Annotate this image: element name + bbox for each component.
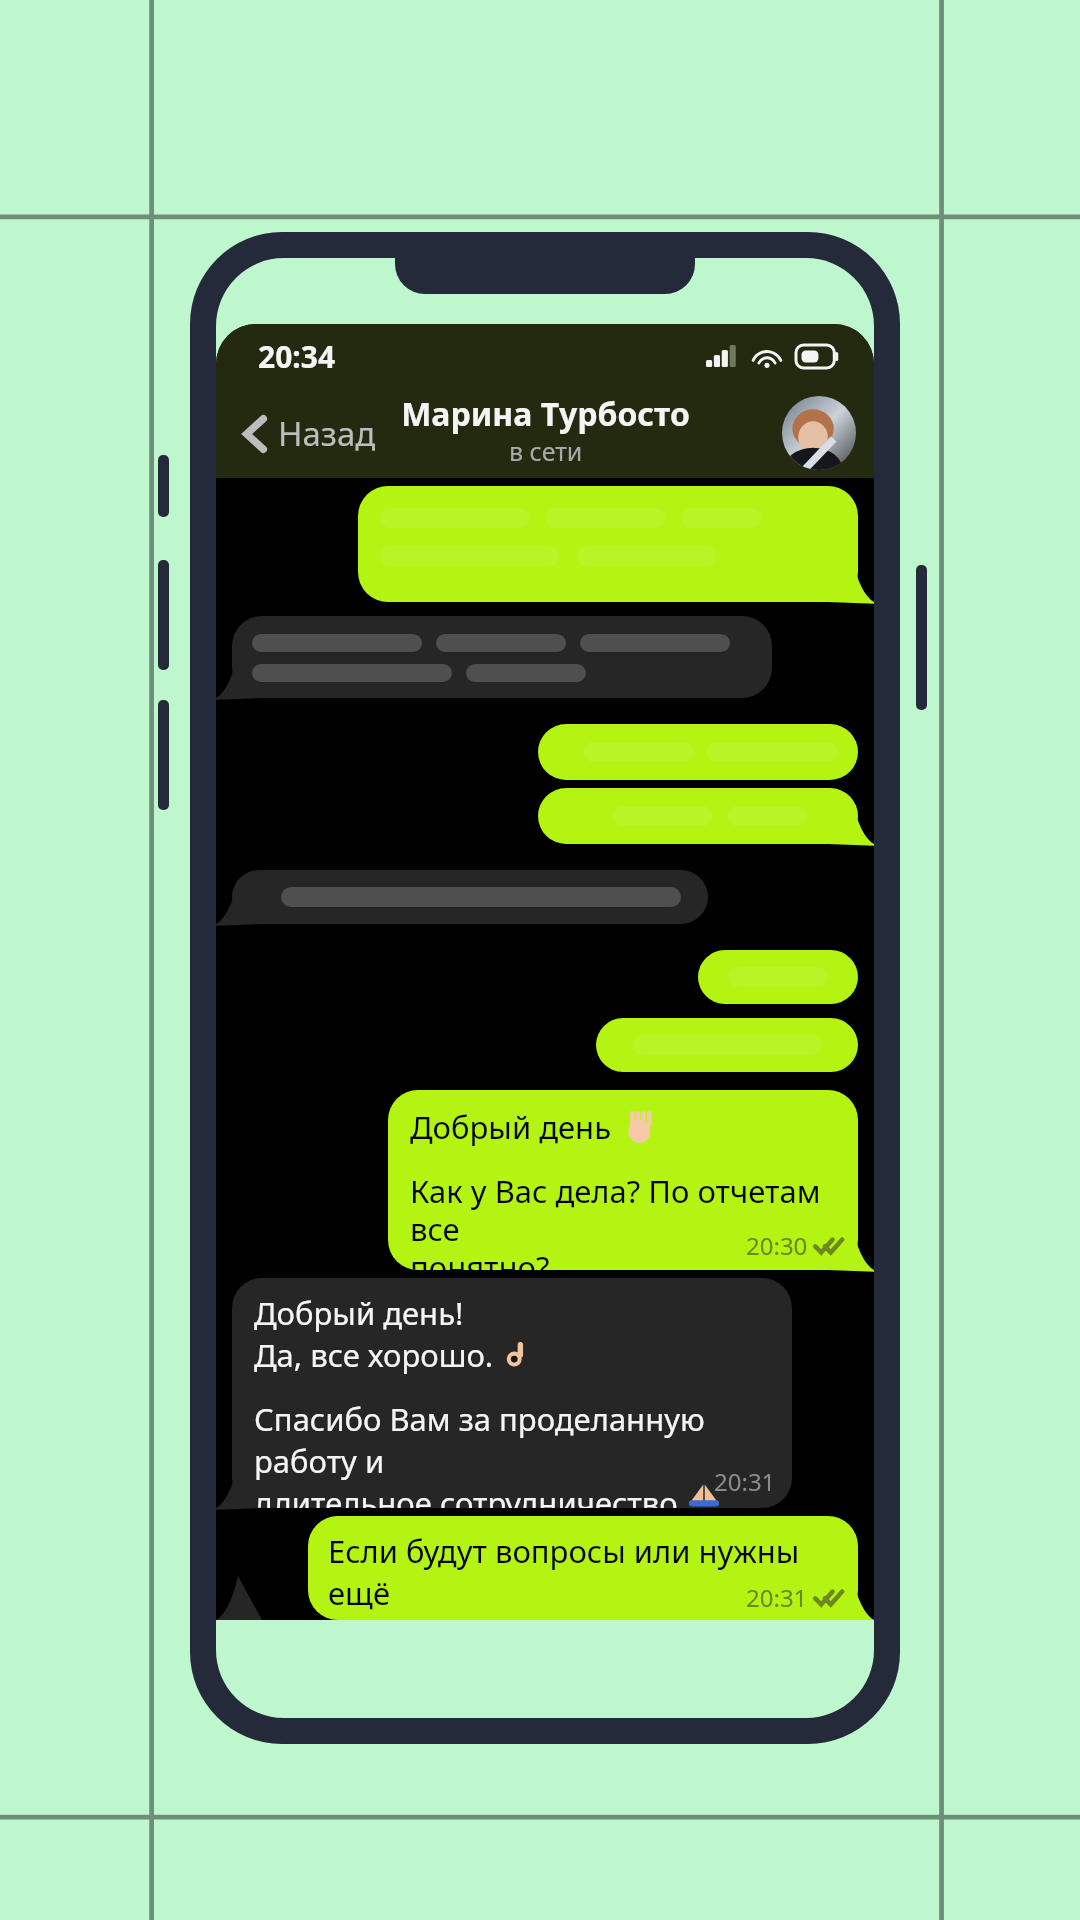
staticText: длительное сотрудничество [254,1482,686,1508]
staticText: Да, все хорошо. [254,1334,502,1376]
button[interactable] [698,950,858,1004]
staticText: съёмки/креативы, то обращайтесь. [328,1614,844,1620]
button[interactable] [596,1018,858,1072]
button[interactable] [358,486,858,602]
staticText: Назад [278,411,376,456]
staticText: Добрый день [410,1106,612,1148]
staticText: 20:31 [746,1581,808,1614]
staticText: Если будут вопросы или нужны ещё [328,1530,844,1614]
staticText: в сети [509,434,583,468]
button[interactable] [232,616,772,698]
button[interactable] [538,724,858,780]
button[interactable]: Profile photo [782,396,856,470]
button[interactable] [232,870,708,924]
staticText: 20:34 [258,336,336,377]
staticText: Марина Турбосто [401,392,690,436]
button[interactable]: Если будут вопросы или нужны ещё [308,1516,858,1620]
button[interactable]: Назад [236,405,382,462]
staticText: Добрый день! [254,1292,464,1334]
staticText: 20:31 [714,1465,776,1498]
button[interactable]: Добрый день [388,1090,858,1270]
button[interactable] [538,788,858,844]
staticText: 20:30 [746,1229,808,1262]
staticText: Как у Вас дела? По отчетам все понятно? [410,1170,842,1270]
staticText: Спасибо Вам за проделанную работу и [254,1398,776,1482]
button[interactable]: Добрый день! [232,1278,792,1508]
